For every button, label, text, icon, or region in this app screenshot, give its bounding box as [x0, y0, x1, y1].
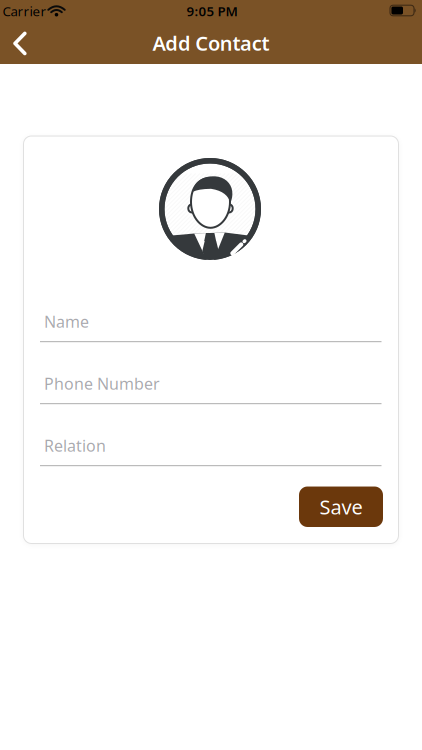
- button[interactable]: Edit photo: [159, 158, 261, 260]
- staticText: Carrier: [2, 2, 46, 20]
- button[interactable]: Phone Number: [40, 373, 381, 415]
- staticText: Phone Number: [44, 373, 160, 394]
- button[interactable]: Back: [4, 22, 40, 64]
- button[interactable]: Name: [40, 311, 381, 353]
- staticText: Relation: [44, 435, 106, 456]
- staticText: Add Contact: [152, 30, 269, 56]
- staticText: Save: [319, 493, 362, 520]
- staticText: Name: [44, 311, 89, 332]
- staticText: 9:05 PM: [186, 2, 237, 20]
- button[interactable]: Relation: [40, 435, 381, 477]
- button[interactable]: Save: [299, 486, 383, 527]
